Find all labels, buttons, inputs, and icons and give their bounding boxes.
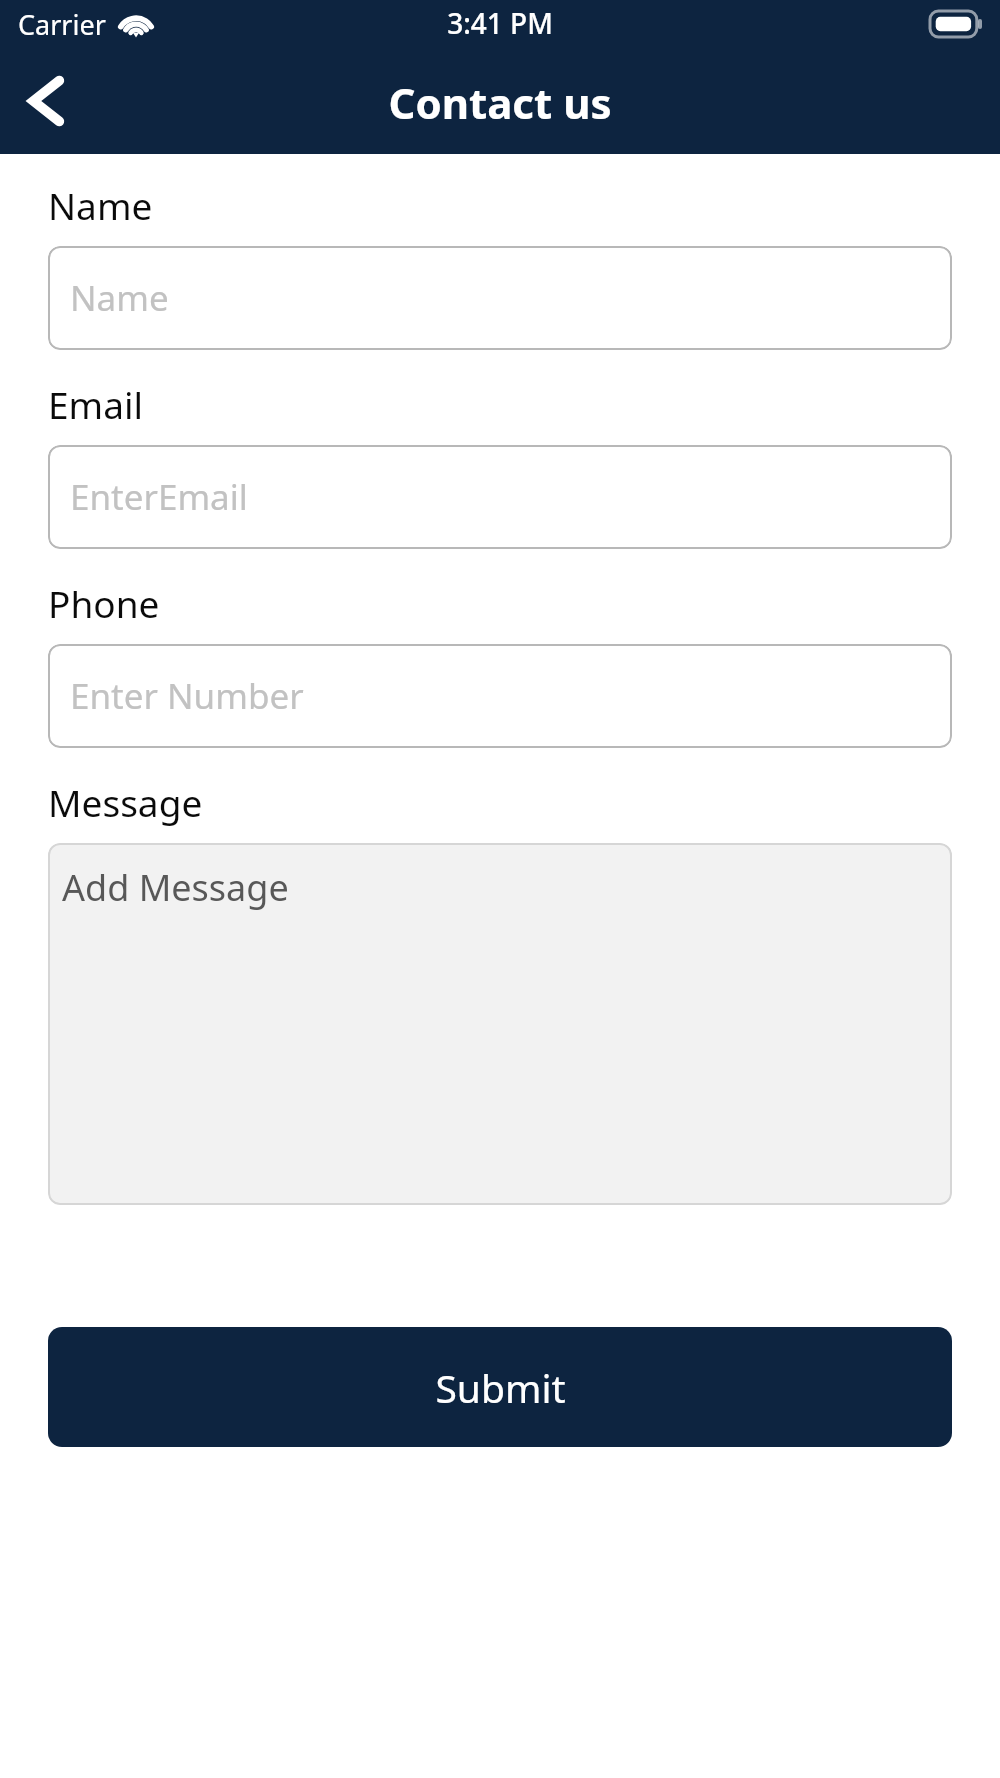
button[interactable]: EnterEmail [48,445,952,549]
staticText: Email [48,379,144,429]
staticText: Phone [48,578,160,628]
staticText: Contact us [388,74,612,131]
staticText: Carrier [18,6,106,43]
button[interactable]: Back [14,70,76,132]
staticText: Submit [435,1361,566,1414]
staticText: Add Message [62,863,289,912]
button[interactable]: Enter Number [48,644,952,748]
staticText: Name [48,180,153,230]
staticText: 3:41 PM [447,4,553,42]
button[interactable]: Add Message [48,843,952,1205]
button[interactable]: Name [48,246,952,350]
button[interactable]: Submit [48,1327,952,1447]
staticText: Enter Number [70,672,304,720]
staticText: EnterEmail [70,473,248,521]
staticText: Name [70,274,169,322]
staticText: Message [48,777,203,827]
